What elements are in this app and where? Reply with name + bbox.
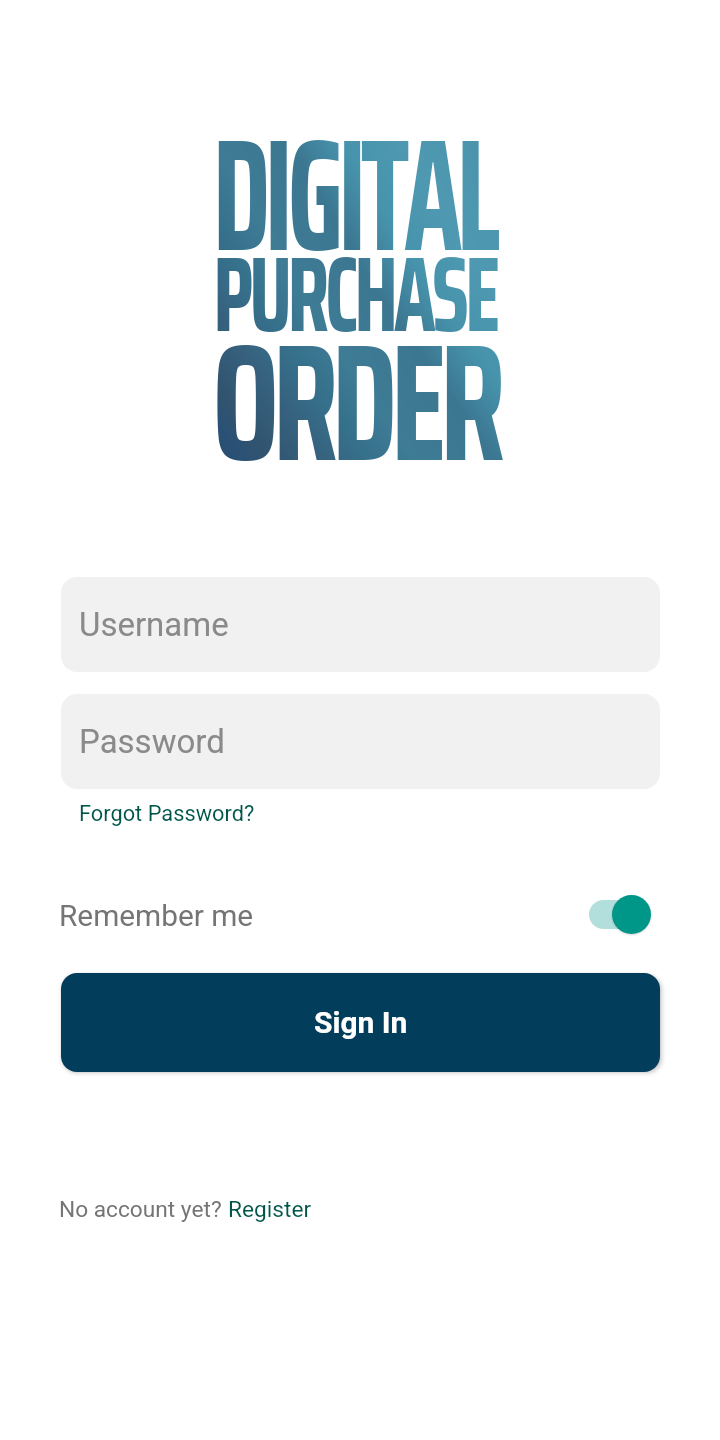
staticText: Remember me bbox=[59, 898, 254, 933]
button[interactable]: Forgot Password? bbox=[69, 795, 265, 833]
staticText: Password bbox=[79, 722, 225, 761]
button[interactable]: Username bbox=[61, 577, 660, 672]
staticText: Username bbox=[79, 605, 229, 644]
button[interactable]: Password bbox=[61, 694, 660, 789]
button[interactable]: Sign In bbox=[61, 973, 660, 1072]
button[interactable]: Remember me, on bbox=[588, 889, 659, 941]
staticText: Sign In bbox=[314, 1005, 408, 1040]
staticText: No account yet? bbox=[59, 1196, 228, 1223]
button[interactable]: Register bbox=[228, 1196, 312, 1223]
other: Digital Purchase Order bbox=[210, 135, 510, 470]
staticText: Register bbox=[228, 1196, 312, 1223]
staticText: Forgot Password? bbox=[79, 801, 255, 827]
